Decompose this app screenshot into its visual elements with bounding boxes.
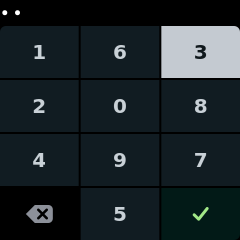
button[interactable]: 9	[81, 134, 159, 186]
staticText: 5	[113, 202, 127, 226]
button[interactable]: 4	[0, 134, 79, 186]
button[interactable]: 3	[161, 26, 240, 78]
staticText: 1	[32, 40, 46, 64]
staticText: 6	[113, 40, 127, 64]
staticText: 8	[194, 94, 208, 118]
staticText: 4	[32, 148, 46, 172]
button[interactable]: 7	[161, 134, 240, 186]
button[interactable]: 5	[81, 188, 159, 240]
button[interactable]: 8	[161, 80, 240, 132]
button[interactable]: 6	[81, 26, 159, 78]
staticText: 7	[194, 148, 208, 172]
staticText: 9	[113, 148, 127, 172]
staticText: 0	[113, 94, 127, 118]
button[interactable]: 0	[81, 80, 159, 132]
button[interactable]: Confirm	[161, 188, 240, 240]
button[interactable]: 1	[0, 26, 79, 78]
staticText: 2	[32, 94, 46, 118]
button[interactable]: Delete	[0, 188, 79, 240]
staticText: 3	[194, 40, 208, 64]
button[interactable]: 2	[0, 80, 79, 132]
